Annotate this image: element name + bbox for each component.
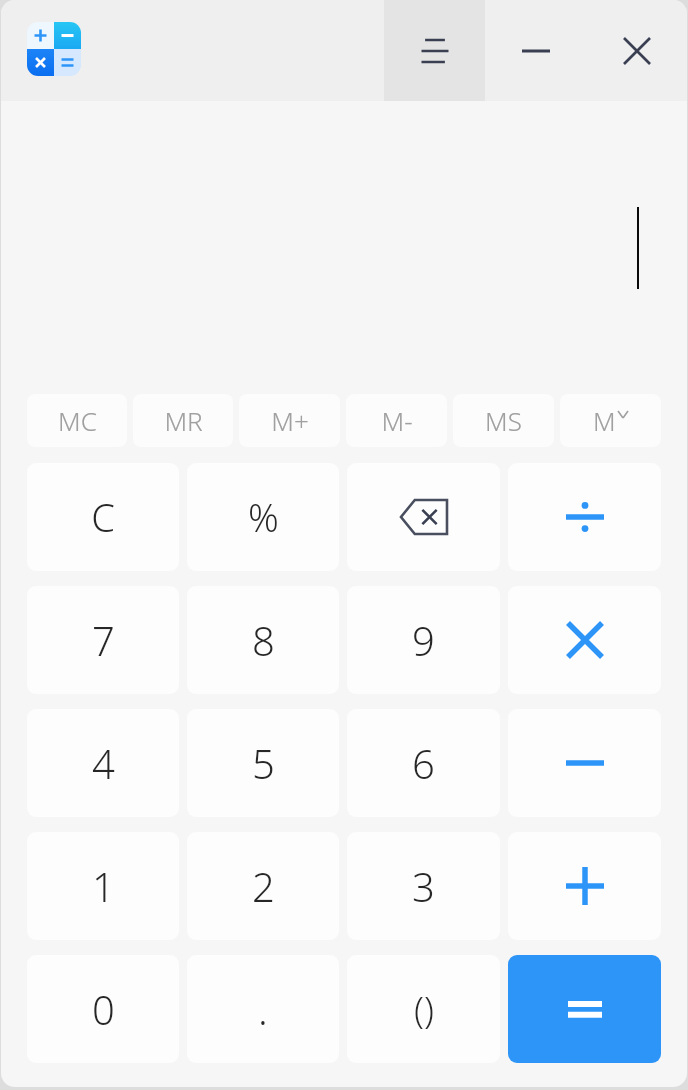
staticText: 6 bbox=[412, 736, 435, 790]
staticText: MS bbox=[485, 403, 522, 438]
staticText: MR bbox=[164, 403, 203, 438]
staticText: M- bbox=[381, 403, 413, 438]
button[interactable]: 4 bbox=[27, 709, 179, 817]
button[interactable]: Menu bbox=[384, 0, 485, 101]
button[interactable]: 3 bbox=[347, 832, 500, 940]
staticText: 3 bbox=[412, 859, 435, 913]
button[interactable]: Multiply bbox=[508, 586, 661, 694]
staticText: C bbox=[91, 491, 115, 543]
button[interactable]: Memory options bbox=[560, 394, 661, 447]
button[interactable]: 6 bbox=[347, 709, 500, 817]
button[interactable]: Minus bbox=[508, 709, 661, 817]
staticText: MC bbox=[58, 403, 97, 438]
button[interactable]: Divide bbox=[508, 463, 661, 571]
staticText: % bbox=[248, 491, 279, 543]
button[interactable]: 8 bbox=[187, 586, 339, 694]
button[interactable]: M- bbox=[346, 394, 447, 447]
button[interactable]: . bbox=[187, 955, 339, 1063]
button[interactable]: Close bbox=[586, 0, 687, 101]
staticText: 7 bbox=[92, 613, 115, 667]
staticText: 9 bbox=[412, 613, 435, 667]
button[interactable]: Backspace bbox=[347, 463, 500, 571]
staticText: 1 bbox=[92, 859, 115, 913]
button[interactable]: Minimize bbox=[485, 0, 586, 101]
button[interactable]: C bbox=[27, 463, 179, 571]
staticText: 4 bbox=[92, 736, 115, 790]
button[interactable]: Equals bbox=[508, 955, 661, 1063]
button[interactable]: Plus bbox=[508, 832, 661, 940]
button[interactable]: 9 bbox=[347, 586, 500, 694]
staticText: 8 bbox=[252, 613, 275, 667]
button[interactable]: MS bbox=[453, 394, 554, 447]
button[interactable]: 1 bbox=[27, 832, 179, 940]
staticText: . bbox=[258, 982, 268, 1036]
button[interactable]: () bbox=[347, 955, 500, 1063]
staticText: () bbox=[414, 985, 434, 1034]
staticText: 2 bbox=[252, 859, 275, 913]
button[interactable]: Calculator icon bbox=[27, 22, 81, 76]
button[interactable]: MR bbox=[133, 394, 233, 447]
button[interactable]: MC bbox=[27, 394, 127, 447]
button[interactable]: 0 bbox=[27, 955, 179, 1063]
staticText: M bbox=[593, 403, 616, 438]
staticText: 5 bbox=[252, 736, 275, 790]
button[interactable]: 7 bbox=[27, 586, 179, 694]
button[interactable]: 2 bbox=[187, 832, 339, 940]
button[interactable]: 5 bbox=[187, 709, 339, 817]
button[interactable]: M+ bbox=[239, 394, 340, 447]
staticText: M+ bbox=[271, 403, 309, 438]
button[interactable]: % bbox=[187, 463, 339, 571]
staticText: 0 bbox=[92, 982, 115, 1036]
